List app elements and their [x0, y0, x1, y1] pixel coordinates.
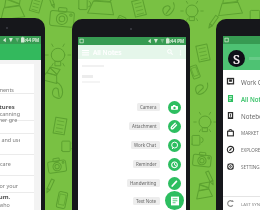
staticText: S: [233, 50, 241, 67]
button[interactable]: Reminder: [133, 160, 160, 168]
staticText: Camera: [140, 104, 157, 110]
staticText: Handwriting: [130, 180, 157, 186]
staticText: ou who: [0, 201, 25, 208]
staticText: Work Chat: [241, 78, 260, 86]
button[interactable]: Notebook: [223, 107, 260, 124]
staticText: s care: [0, 160, 30, 167]
button[interactable]: Work Chat: [131, 141, 160, 149]
staticText: MARKET: [241, 130, 259, 136]
staticText: All Notes: [93, 48, 122, 57]
staticText: Attachment: [132, 123, 157, 129]
button[interactable]: Attachment: [129, 122, 160, 130]
button[interactable]: EXPLORE EV: [223, 141, 260, 158]
staticText: Text Note: [136, 198, 157, 204]
staticText: nt for your: [0, 182, 25, 189]
button[interactable]: [78, 45, 186, 210]
staticText: 6:44 PM: [22, 37, 40, 43]
staticText: All Notes: [241, 95, 260, 103]
staticText: any other great: [0, 116, 17, 123]
button[interactable]: LAST SYNC: [223, 197, 260, 210]
staticText: ium.: [0, 193, 31, 201]
button[interactable]: Camera: [137, 103, 160, 111]
staticText: Reminder: [136, 161, 157, 167]
staticText: eatures: [0, 103, 26, 111]
button[interactable]: Camera: [168, 101, 181, 114]
button[interactable]: Text Note: [133, 197, 160, 205]
staticText: and scanning,: [0, 110, 20, 117]
button[interactable]: New note: [165, 191, 184, 210]
button[interactable]: MARKET: [223, 124, 260, 141]
button[interactable]: Attachment: [168, 120, 181, 133]
staticText: LAST SYNC: [241, 201, 260, 207]
staticText: EXPLORE EV: [241, 147, 260, 153]
staticText: PDFs, and use: [0, 136, 20, 143]
button[interactable]: All Notes: [223, 90, 260, 107]
staticText: 6:44 PM: [167, 38, 185, 44]
staticText: ments: [0, 86, 32, 93]
button[interactable]: Handwriting: [127, 179, 160, 187]
staticText: Work Chat: [134, 142, 157, 148]
staticText: Notebook: [241, 112, 260, 120]
button[interactable]: Reminder: [168, 158, 181, 171]
button[interactable]: Work Chat: [223, 73, 260, 90]
staticText: SETTINGS: [241, 164, 260, 170]
button[interactable]: SETTINGS: [223, 158, 260, 175]
button[interactable]: Handwriting: [168, 177, 181, 190]
button[interactable]: Work Chat: [168, 139, 181, 152]
